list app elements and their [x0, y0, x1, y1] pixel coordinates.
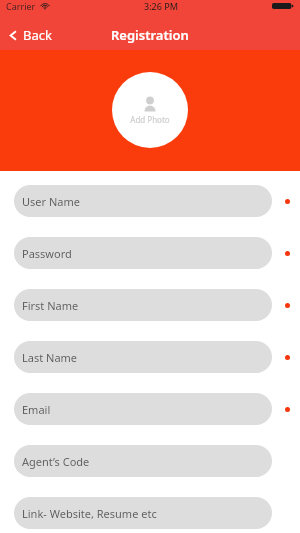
button[interactable]: Password	[14, 237, 272, 269]
button[interactable]: First Name	[14, 289, 272, 321]
staticText: User Name	[22, 194, 80, 209]
staticText: Password	[22, 246, 72, 261]
staticText: Agent’s Code	[22, 454, 90, 469]
button[interactable]: Link- Website, Resume etc	[14, 497, 272, 529]
staticText: Add Photo	[130, 114, 170, 125]
button[interactable]: Email	[14, 393, 272, 425]
staticText: Registration	[111, 26, 189, 44]
staticText: Email	[22, 402, 51, 417]
button[interactable]: Agent’s Code	[14, 445, 272, 477]
button[interactable]: User Name	[14, 185, 272, 217]
staticText: Link- Website, Resume etc	[22, 506, 157, 521]
button[interactable]: Back	[0, 22, 62, 48]
staticText: Back	[23, 26, 52, 44]
button[interactable]: Last Name	[14, 341, 272, 373]
staticText: Last Name	[22, 350, 78, 365]
button[interactable]: Add Photo	[112, 72, 188, 148]
staticText: First Name	[22, 298, 79, 313]
staticText: 3:26 PM	[144, 0, 178, 12]
staticText: Carrier	[6, 0, 36, 12]
